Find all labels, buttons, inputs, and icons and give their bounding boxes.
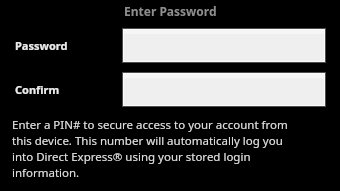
staticText: Enter Password bbox=[124, 3, 217, 19]
staticText: Confirm bbox=[15, 82, 60, 97]
staticText: Password bbox=[15, 38, 68, 53]
staticText: information. bbox=[12, 165, 80, 181]
staticText: Enter a PIN# to secure access to your ac… bbox=[12, 117, 288, 133]
staticText: into Direct Express® using your stored l… bbox=[12, 149, 251, 165]
staticText: this device. This number will automatica… bbox=[12, 133, 283, 149]
